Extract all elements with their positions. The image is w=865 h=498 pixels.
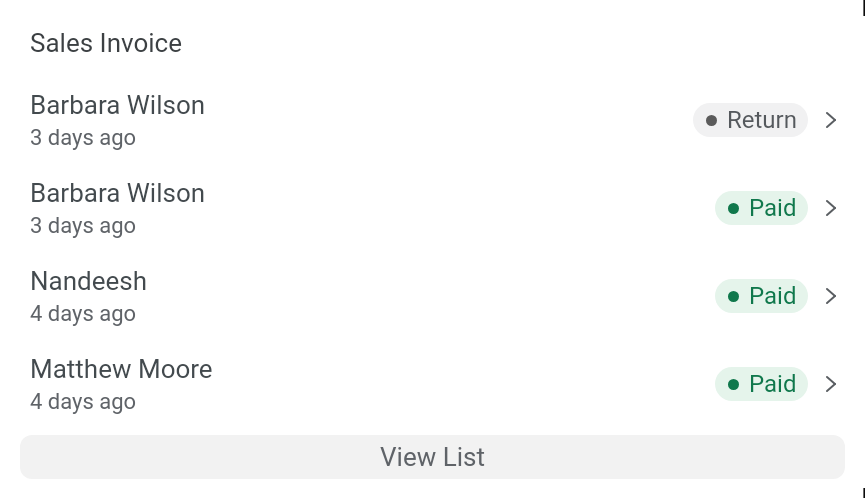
other: Open invoice <box>819 196 843 220</box>
staticText: Paid <box>749 282 797 310</box>
staticText: 4 days ago <box>30 389 137 415</box>
staticText: Nandeesh <box>30 266 148 296</box>
button[interactable]: Barbara Wilson <box>0 164 865 252</box>
staticText: 4 days ago <box>30 301 137 327</box>
staticText: Sales Invoice <box>30 28 182 58</box>
staticText: Barbara Wilson <box>30 178 206 208</box>
staticText: Matthew Moore <box>30 354 213 384</box>
button[interactable]: Paid <box>715 191 808 225</box>
staticText: 3 days ago <box>30 125 137 151</box>
staticText: Paid <box>749 194 797 222</box>
button[interactable]: Paid <box>715 367 808 401</box>
other: Open invoice <box>819 372 843 396</box>
button[interactable]: Nandeesh <box>0 252 865 340</box>
other: Open invoice <box>819 108 843 132</box>
button[interactable]: Return <box>693 103 808 137</box>
button[interactable]: Matthew Moore <box>0 340 865 428</box>
button[interactable]: Paid <box>715 279 808 313</box>
button[interactable]: View List <box>20 435 845 479</box>
staticText: Barbara Wilson <box>30 90 206 120</box>
staticText: Return <box>727 106 797 134</box>
staticText: 3 days ago <box>30 213 137 239</box>
button[interactable]: Barbara Wilson <box>0 76 865 164</box>
staticText: View List <box>380 442 485 472</box>
staticText: Paid <box>749 370 797 398</box>
other: Open invoice <box>819 284 843 308</box>
